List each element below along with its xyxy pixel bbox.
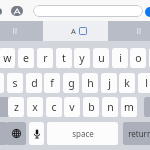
staticText: space <box>72 128 94 139</box>
button[interactable]: l <box>138 73 150 93</box>
staticText: o <box>135 51 142 65</box>
button[interactable]: y <box>74 48 90 68</box>
button[interactable]: t <box>56 48 72 68</box>
staticText: w <box>3 51 12 65</box>
button[interactable]: return <box>123 122 150 145</box>
staticText: A <box>71 26 76 36</box>
staticText: r <box>43 51 48 65</box>
button[interactable]: App Store <box>11 6 23 16</box>
button[interactable]: Dictate <box>29 122 44 145</box>
button[interactable] <box>108 21 150 41</box>
staticText: e <box>23 51 29 65</box>
button[interactable]: s <box>7 73 23 93</box>
button[interactable]: j <box>101 73 117 93</box>
button[interactable]: c <box>46 97 62 117</box>
staticText: l <box>145 76 148 90</box>
button[interactable]: z <box>8 97 24 117</box>
staticText: x <box>32 100 38 114</box>
staticText: b <box>88 100 95 114</box>
button[interactable] <box>0 21 43 41</box>
staticText: s <box>12 76 18 90</box>
button[interactable]: v <box>64 97 80 117</box>
staticText: h <box>87 76 94 90</box>
staticText: y <box>79 51 85 65</box>
staticText: t <box>62 51 66 65</box>
button[interactable]: p <box>149 48 150 68</box>
staticText: v <box>69 100 75 114</box>
button[interactable]: i <box>112 48 128 68</box>
staticText: m <box>124 100 134 114</box>
button[interactable]: o <box>130 48 146 68</box>
staticText: g <box>68 76 75 90</box>
button[interactable] <box>33 5 143 17</box>
staticText: j <box>108 76 111 90</box>
button[interactable]: r <box>37 48 53 68</box>
staticText: i <box>119 51 122 65</box>
staticText: c <box>51 100 57 114</box>
staticText: f <box>50 76 54 90</box>
button[interactable]: Camera <box>0 8 2 15</box>
button[interactable] <box>0 122 7 145</box>
staticText: return <box>128 128 150 139</box>
button[interactable]: g <box>63 73 79 93</box>
staticText: n <box>107 100 114 114</box>
button[interactable]: d <box>26 73 42 93</box>
button[interactable] <box>0 97 9 117</box>
button[interactable]: b <box>83 97 99 117</box>
button[interactable]: Send <box>145 7 150 17</box>
button[interactable]: Backspace <box>144 97 150 117</box>
button[interactable]: x <box>27 97 43 117</box>
button[interactable]: f <box>44 73 60 93</box>
button[interactable]: u <box>93 48 109 68</box>
button[interactable]: h <box>82 73 98 93</box>
button[interactable]: a <box>0 73 4 93</box>
button[interactable]: k <box>119 73 135 93</box>
button[interactable]: e <box>18 48 34 68</box>
staticText: z <box>14 100 19 114</box>
button[interactable]: space <box>47 122 118 145</box>
staticText: d <box>31 76 38 90</box>
button[interactable]: w <box>0 48 15 68</box>
button[interactable]: n <box>102 97 118 117</box>
button[interactable]: A <box>43 21 108 41</box>
staticText: k <box>124 76 130 90</box>
button[interactable]: m <box>121 97 137 117</box>
staticText: u <box>98 51 105 65</box>
button[interactable]: Switch keyboard <box>6 122 26 145</box>
